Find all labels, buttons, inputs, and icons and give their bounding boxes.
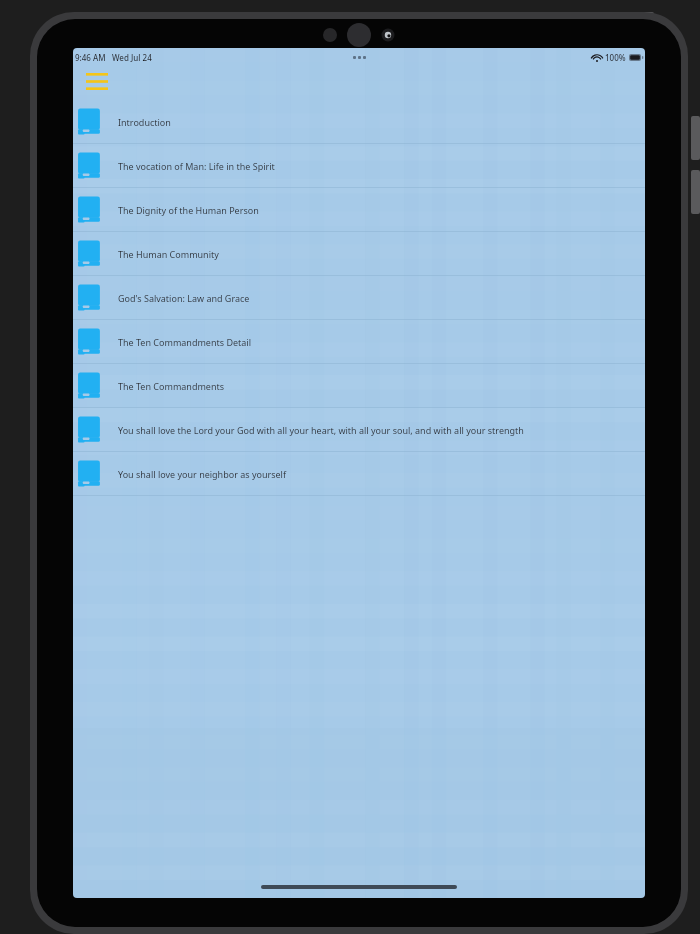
other: Book bbox=[77, 460, 103, 488]
button[interactable]: Book bbox=[73, 364, 645, 407]
button[interactable]: Book bbox=[73, 100, 645, 143]
staticText: Wed Jul 24 bbox=[112, 52, 152, 63]
other: Book bbox=[77, 328, 103, 356]
button[interactable]: Book bbox=[73, 452, 645, 495]
staticText: The Dignity of the Human Person bbox=[118, 204, 259, 216]
button[interactable]: Book bbox=[73, 320, 645, 363]
staticText: The Human Community bbox=[118, 248, 219, 260]
other: Book bbox=[77, 108, 103, 136]
button[interactable]: Book bbox=[73, 276, 645, 319]
button[interactable]: Book bbox=[73, 408, 645, 451]
other: Book bbox=[77, 152, 103, 180]
button[interactable]: Book bbox=[73, 144, 645, 187]
other: Book bbox=[77, 372, 103, 400]
other: Book bbox=[77, 284, 103, 312]
staticText: You shall love the Lord your God with al… bbox=[118, 424, 524, 436]
staticText: The vocation of Man: Life in the Spirit bbox=[118, 160, 275, 172]
other: Book bbox=[77, 416, 103, 444]
other: Book bbox=[77, 196, 103, 224]
button[interactable]: Menu bbox=[79, 68, 115, 94]
staticText: 100% bbox=[605, 52, 626, 63]
staticText: 9:46 AM bbox=[75, 52, 106, 63]
staticText: God's Salvation: Law and Grace bbox=[118, 292, 250, 304]
staticText: The Ten Commandments Detail bbox=[118, 336, 251, 348]
staticText: The Ten Commandments bbox=[118, 380, 225, 392]
other: Book bbox=[77, 240, 103, 268]
button[interactable]: Book bbox=[73, 188, 645, 231]
staticText: Introduction bbox=[118, 116, 171, 128]
button[interactable]: Book bbox=[73, 232, 645, 275]
staticText: You shall love your neighbor as yourself bbox=[118, 468, 287, 480]
